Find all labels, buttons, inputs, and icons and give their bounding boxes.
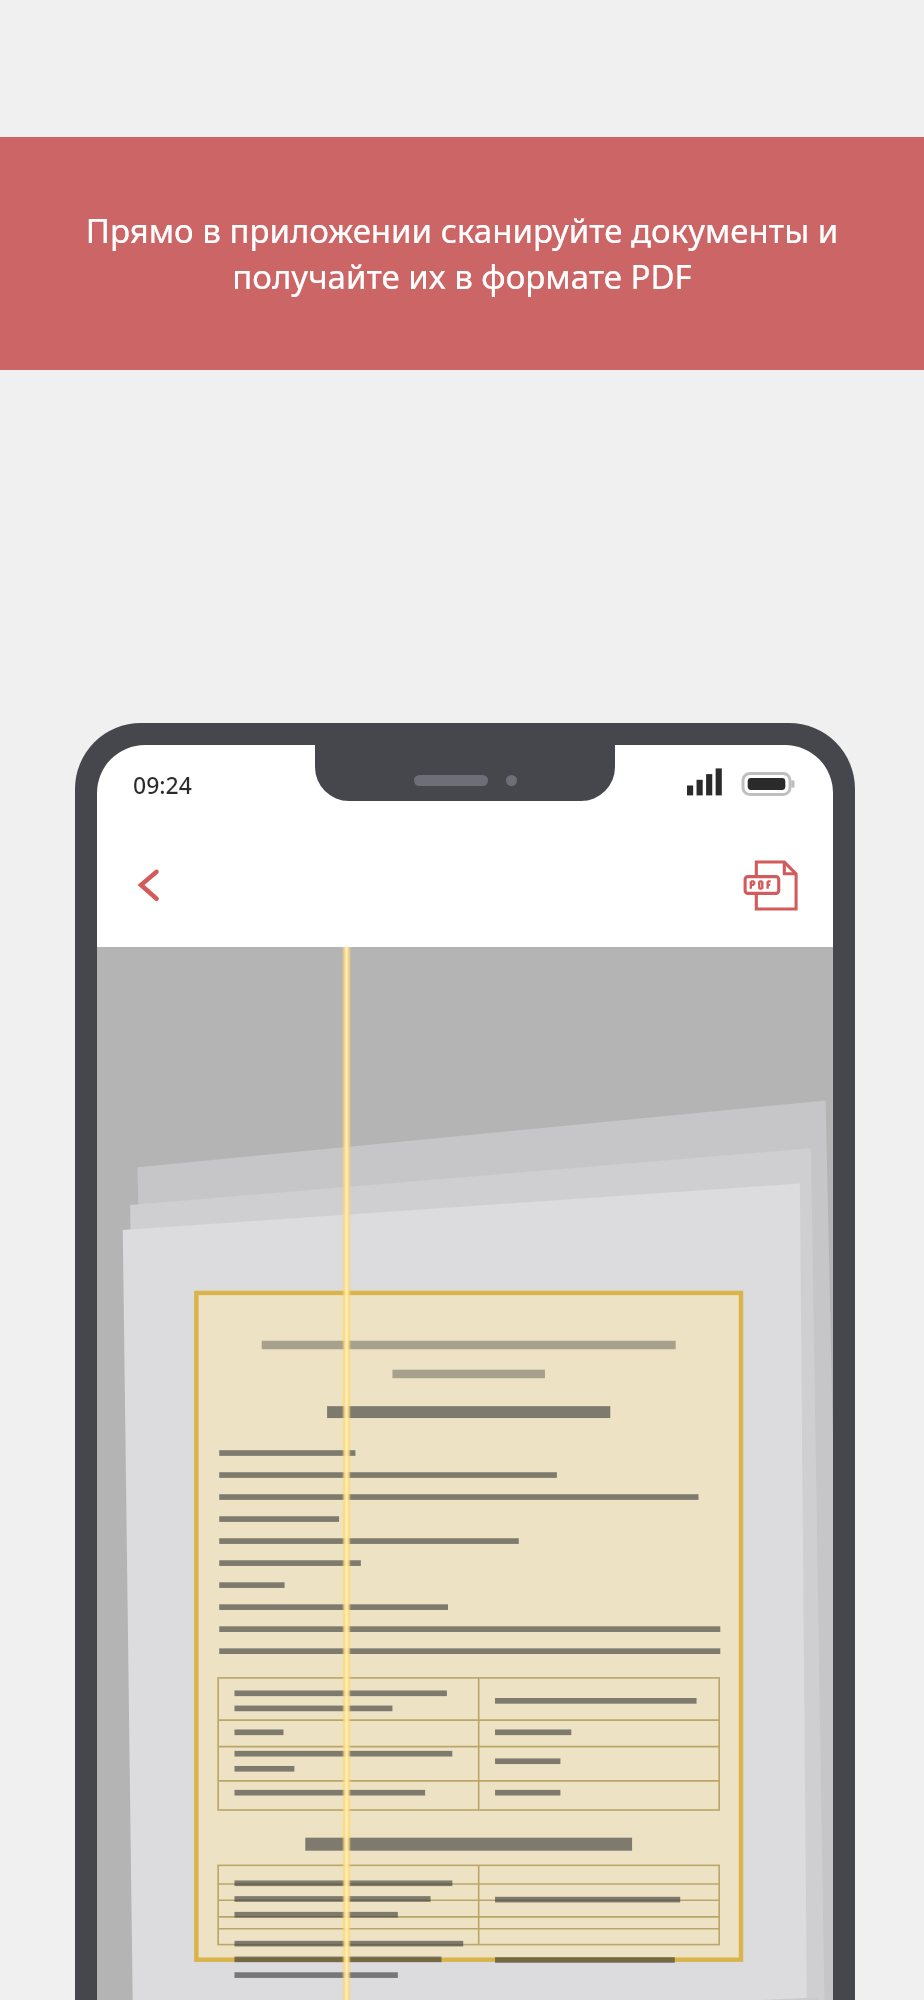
button[interactable]: Save as PDF [739,852,805,918]
staticText: Прямо в приложении сканируйте документы … [62,208,862,299]
staticText: 09:24 [133,769,192,800]
button[interactable]: Back [119,854,181,916]
